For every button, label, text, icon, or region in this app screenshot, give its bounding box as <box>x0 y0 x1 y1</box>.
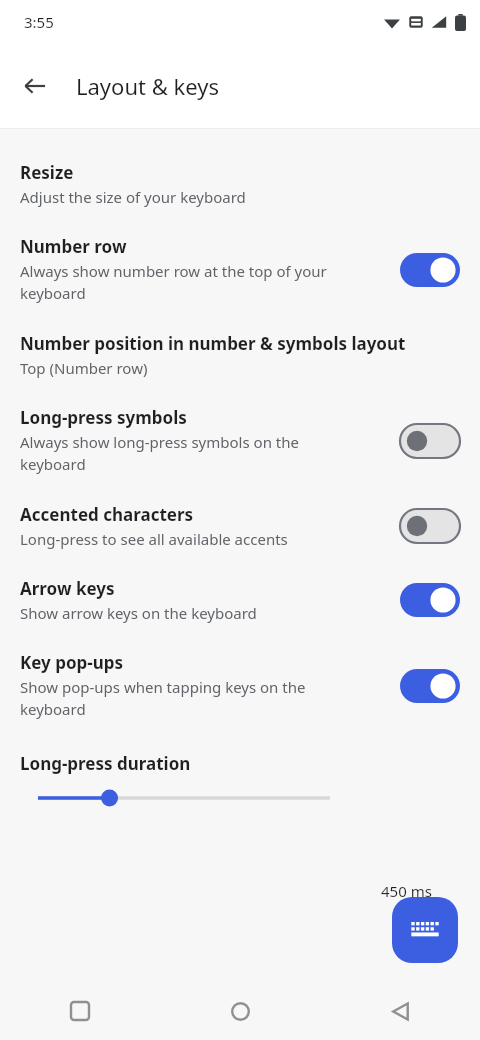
staticText: Layout & keys <box>76 71 219 101</box>
button[interactable]: Open keyboard <box>392 897 458 963</box>
staticText: Adjust the size of your keyboard <box>20 187 246 207</box>
staticText: Resize <box>20 161 74 184</box>
staticText: Number row <box>20 235 127 258</box>
button[interactable]: Toggle on <box>400 253 460 287</box>
button[interactable]: Resize <box>0 151 480 225</box>
staticText: Accented characters <box>20 503 194 526</box>
button[interactable]: Home <box>160 982 320 1040</box>
staticText: 3:55 <box>24 12 54 32</box>
staticText: Arrow keys <box>20 577 115 600</box>
button[interactable]: Toggle on <box>400 669 460 703</box>
staticText: Always show number row at the top of you… <box>20 261 327 304</box>
staticText: 450 ms <box>381 881 432 901</box>
staticText: Long-press duration <box>20 752 191 775</box>
button[interactable]: Accented characters <box>0 493 480 567</box>
staticText: Long-press symbols <box>20 406 187 429</box>
button[interactable]: Key pop-ups <box>0 641 480 738</box>
staticText: Long-press to see all available accents <box>20 529 288 549</box>
button[interactable] <box>20 786 340 810</box>
staticText: Show pop-ups when tapping keys on the ke… <box>20 677 306 720</box>
staticText: Key pop-ups <box>20 651 124 674</box>
button[interactable]: Toggle on <box>400 583 460 617</box>
button[interactable]: Recent apps <box>0 982 160 1040</box>
button[interactable]: Toggle off <box>400 509 460 543</box>
staticText: Show arrow keys on the keyboard <box>20 603 257 623</box>
button[interactable]: Number row <box>0 225 480 322</box>
button[interactable]: Long-press symbols <box>0 396 480 493</box>
button[interactable]: Number position in number & symbols layo… <box>0 322 480 396</box>
staticText: Number position in number & symbols layo… <box>20 332 406 355</box>
staticText: Always show long-press symbols on the ke… <box>20 432 299 475</box>
button[interactable]: Arrow keys <box>0 567 480 641</box>
staticText: Top (Number row) <box>20 358 148 378</box>
button[interactable]: Toggle off <box>400 424 460 458</box>
button[interactable]: Back <box>320 982 480 1040</box>
button[interactable]: Back <box>10 61 60 111</box>
